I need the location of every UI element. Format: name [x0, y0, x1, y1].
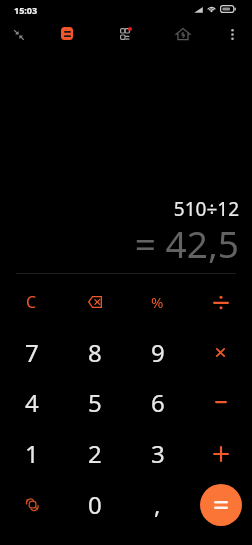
staticText: 1 [25, 437, 39, 470]
staticText: 3 [151, 437, 165, 470]
staticText: 6 [151, 386, 165, 419]
staticText: 510÷12 [173, 196, 239, 222]
button[interactable]: Collapse [5, 21, 33, 49]
button[interactable]: Minus [189, 377, 252, 428]
staticText: 2 [88, 437, 102, 470]
button[interactable]: 8 [63, 327, 126, 377]
button[interactable]: 9 [126, 327, 189, 377]
staticText: 7 [25, 336, 39, 369]
button[interactable]: Divide [189, 277, 252, 327]
button[interactable]: History [0, 479, 63, 530]
button[interactable]: Backspace [63, 277, 126, 327]
button[interactable]: More options [218, 20, 246, 48]
button[interactable]: 6 [126, 377, 189, 428]
staticText: 5 [88, 386, 102, 419]
button[interactable]: 7 [0, 327, 63, 377]
staticText: % [151, 292, 164, 312]
button[interactable]: Scan [111, 20, 139, 48]
staticText: 15:03 [14, 4, 38, 16]
staticText: = 42,5 [134, 218, 239, 268]
button[interactable]: 4 [0, 377, 63, 428]
button[interactable]: Calculator [53, 19, 81, 47]
button[interactable]: % [126, 277, 189, 327]
button[interactable]: Home [169, 20, 197, 48]
button[interactable]: C [0, 277, 63, 327]
button[interactable]: Equals [200, 484, 242, 526]
button[interactable]: , [126, 479, 189, 530]
button[interactable]: 2 [63, 428, 126, 479]
staticText: , [154, 488, 161, 521]
button[interactable]: 5 [63, 377, 126, 428]
staticText: 8 [88, 336, 102, 369]
staticText: C [26, 291, 37, 313]
button[interactable]: 0 [63, 479, 126, 530]
button[interactable]: Plus [189, 428, 252, 479]
button[interactable]: Multiply [189, 327, 252, 377]
staticText: 4 [25, 386, 39, 419]
button[interactable]: 3 [126, 428, 189, 479]
staticText: 0 [88, 488, 102, 521]
staticText: 9 [151, 336, 165, 369]
button[interactable]: 1 [0, 428, 63, 479]
